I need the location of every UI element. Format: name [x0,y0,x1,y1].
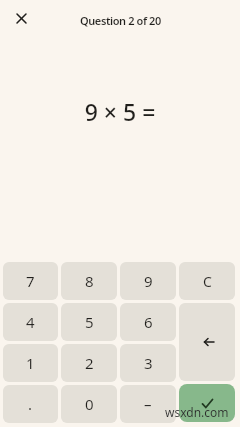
staticText: 8 [85,271,94,291]
button[interactable]: 6 [120,303,176,341]
button[interactable]: 0 [61,385,117,423]
button[interactable]: 1 [3,344,58,382]
button[interactable] [0,0,42,37]
staticText: 7 [26,271,35,291]
button[interactable]: 7 [3,262,58,300]
button[interactable]: . [3,385,58,423]
button[interactable] [179,303,235,381]
staticText: 1 [26,353,35,373]
staticText: Question 2 of 20 [80,13,161,28]
button[interactable]: 5 [61,303,117,341]
button[interactable]: 4 [3,303,58,341]
button[interactable] [179,384,235,422]
staticText: . [28,394,33,414]
button[interactable]: 2 [61,344,117,382]
staticText: 9 × 5 = [0,96,240,127]
staticText: 9 [144,271,153,291]
button[interactable]: 3 [120,344,176,382]
staticText: 5 [85,312,94,332]
staticText: 0 [85,394,94,414]
staticText: 4 [26,312,35,332]
staticText: – [144,394,152,414]
button[interactable]: C [179,262,235,300]
button[interactable]: 8 [61,262,117,300]
staticText: 2 [85,353,94,373]
button[interactable]: 9 [120,262,176,300]
staticText: 6 [144,312,153,332]
staticText: wsxdn.com [165,404,229,420]
button[interactable]: – [120,385,176,423]
staticText: 3 [144,353,153,373]
staticText: C [203,272,212,291]
